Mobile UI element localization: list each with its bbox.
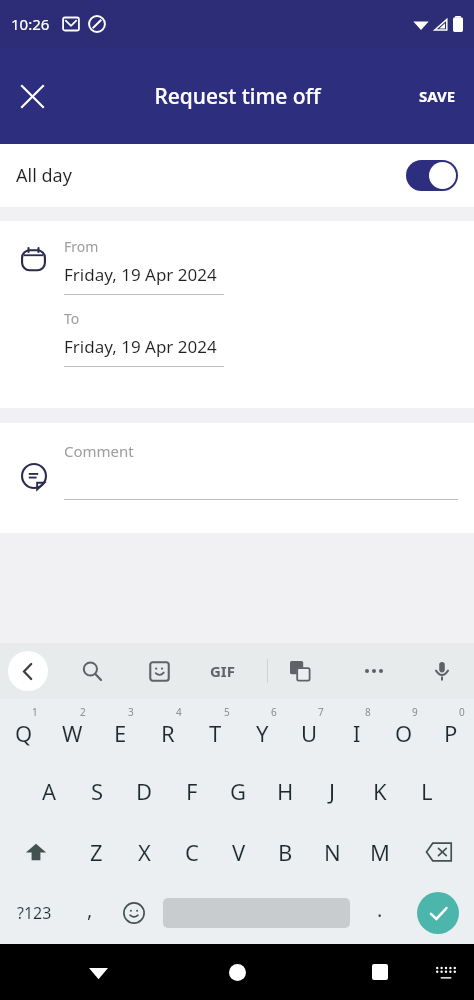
- button[interactable]: B: [262, 821, 309, 882]
- button[interactable]: S: [73, 760, 121, 821]
- button[interactable]: ,: [68, 882, 111, 944]
- button[interactable]: X: [120, 821, 168, 882]
- staticText: D: [136, 776, 153, 806]
- button[interactable]: M: [356, 821, 403, 882]
- button[interactable]: C: [168, 821, 215, 882]
- staticText: 4: [176, 705, 182, 719]
- button[interactable]: Y: [239, 699, 286, 760]
- button[interactable]: Emoji: [111, 882, 156, 944]
- staticText: Friday, 19 Apr 2024: [64, 335, 217, 358]
- button[interactable]: P: [427, 699, 474, 760]
- button[interactable]: Switch keyboard: [428, 954, 464, 990]
- staticText: Request time off: [154, 82, 321, 111]
- button[interactable]: ?123: [0, 882, 68, 944]
- staticText: C: [185, 837, 199, 867]
- staticText: H: [277, 776, 294, 806]
- staticText: F: [186, 776, 198, 806]
- staticText: ,: [87, 896, 93, 923]
- staticText: K: [373, 776, 387, 806]
- button[interactable]: Voice input: [422, 651, 462, 691]
- button[interactable]: Back: [8, 651, 48, 691]
- button[interactable]: F: [168, 760, 215, 821]
- button[interactable]: G: [215, 760, 262, 821]
- staticText: To: [64, 309, 80, 328]
- staticText: S: [91, 776, 104, 806]
- staticText: X: [138, 837, 151, 867]
- button[interactable]: Stickers: [139, 651, 179, 691]
- button[interactable]: From: [64, 237, 224, 295]
- staticText: I: [353, 718, 361, 748]
- staticText: 5: [224, 705, 230, 719]
- staticText: 6: [271, 705, 277, 719]
- button[interactable]: Translate: [280, 651, 320, 691]
- button[interactable]: .: [357, 882, 402, 944]
- button[interactable]: Search: [72, 651, 112, 691]
- button[interactable]: SAVE: [407, 76, 468, 116]
- button[interactable]: A: [25, 760, 73, 821]
- staticText: J: [329, 776, 336, 806]
- button[interactable]: Shift: [0, 821, 72, 882]
- staticText: B: [278, 837, 293, 867]
- button[interactable]: R: [144, 699, 192, 760]
- staticText: 3: [128, 705, 134, 719]
- button[interactable]: Space: [156, 882, 357, 944]
- staticText: Friday, 19 Apr 2024: [64, 263, 217, 286]
- button[interactable]: W: [48, 699, 96, 760]
- staticText: 0: [459, 705, 465, 719]
- staticText: T: [209, 718, 222, 748]
- button[interactable]: Comment: [64, 441, 458, 500]
- staticText: A: [42, 776, 57, 806]
- button[interactable]: U: [286, 699, 333, 760]
- staticText: 8: [365, 705, 371, 719]
- staticText: 2: [80, 705, 86, 719]
- staticText: W: [62, 718, 83, 748]
- staticText: U: [301, 718, 318, 748]
- staticText: M: [370, 837, 390, 867]
- button[interactable]: N: [309, 821, 356, 882]
- button[interactable]: K: [356, 760, 403, 821]
- button[interactable]: Recents: [360, 952, 400, 992]
- staticText: O: [395, 718, 413, 748]
- button[interactable]: O: [380, 699, 427, 760]
- staticText: 9: [412, 705, 418, 719]
- staticText: P: [444, 718, 458, 748]
- staticText: 10:26: [11, 14, 50, 34]
- staticText: Z: [90, 837, 103, 867]
- button[interactable]: To: [64, 309, 224, 367]
- button[interactable]: D: [121, 760, 168, 821]
- staticText: ?123: [17, 902, 52, 924]
- staticText: All day: [16, 163, 72, 188]
- staticText: E: [114, 718, 127, 748]
- button[interactable]: Backspace: [403, 821, 474, 882]
- staticText: 7: [318, 705, 324, 719]
- staticText: R: [161, 718, 175, 748]
- staticText: .: [377, 896, 383, 923]
- button[interactable]: Home: [217, 952, 257, 992]
- button[interactable]: GIF: [210, 661, 235, 681]
- button[interactable]: J: [309, 760, 356, 821]
- button[interactable]: More options: [354, 651, 394, 691]
- button[interactable]: H: [262, 760, 309, 821]
- button[interactable]: All day: [0, 144, 474, 207]
- staticText: N: [324, 837, 341, 867]
- staticText: Q: [15, 718, 33, 748]
- button[interactable]: E: [96, 699, 144, 760]
- staticText: From: [64, 237, 99, 256]
- staticText: L: [421, 776, 433, 806]
- button[interactable]: Close: [8, 72, 56, 120]
- button[interactable]: V: [215, 821, 262, 882]
- staticText: G: [230, 776, 247, 806]
- button[interactable]: I: [333, 699, 380, 760]
- staticText: Y: [256, 718, 269, 748]
- staticText: SAVE: [419, 86, 456, 106]
- button[interactable]: T: [192, 699, 239, 760]
- staticText: Comment: [64, 441, 134, 461]
- button[interactable]: Back: [78, 952, 118, 992]
- staticText: 1: [32, 705, 38, 719]
- button[interactable]: Done: [417, 892, 459, 934]
- button[interactable]: Z: [72, 821, 120, 882]
- staticText: V: [232, 837, 246, 867]
- button[interactable]: L: [403, 760, 450, 821]
- button[interactable]: Q: [0, 699, 48, 760]
